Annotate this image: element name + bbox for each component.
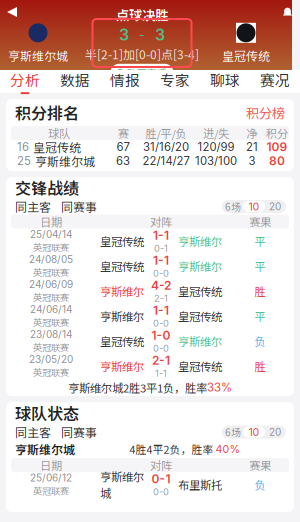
button[interactable]: 赛况	[250, 70, 300, 93]
staticText: 半[2-1]加[0-0]点[3-4]	[85, 45, 199, 63]
button[interactable]: 通知	[275, 0, 300, 25]
button[interactable]: 积分榜	[246, 103, 285, 122]
staticText: 3	[119, 25, 129, 44]
button[interactable]: 同赛事	[51, 423, 97, 441]
staticText: 交锋战绩	[15, 176, 79, 199]
staticText: 亨斯维尔	[100, 358, 144, 374]
staticText: 赛果	[249, 213, 271, 230]
staticText: 22/14/27	[142, 154, 189, 168]
staticText: 进/失	[203, 125, 229, 141]
staticText: 0-1	[154, 243, 168, 254]
button[interactable]: 数据	[50, 70, 100, 93]
staticText: 亨斯维尔	[178, 233, 222, 249]
staticText: 亨斯维尔城	[8, 47, 68, 64]
staticText: 31/16/20	[143, 140, 189, 154]
staticText: 4-2	[151, 278, 171, 293]
button[interactable]: 25/04/14	[11, 228, 289, 253]
staticText: 10	[248, 425, 259, 438]
button[interactable]: 聊球	[200, 70, 250, 93]
staticText: 点球决胜	[116, 5, 168, 24]
staticText: 24/06/14	[30, 303, 72, 315]
staticText: 日期	[40, 457, 62, 473]
staticText: 赛果	[249, 457, 271, 473]
staticText: 1-0	[151, 328, 170, 343]
staticText: 0-0	[153, 268, 169, 279]
staticText: 33%	[207, 381, 232, 394]
staticText: 平	[254, 258, 265, 274]
staticText: 21	[246, 140, 258, 154]
staticText: 同赛事	[61, 198, 97, 215]
staticText: 同主客	[15, 423, 51, 441]
staticText: 皇冠传统	[100, 233, 144, 249]
button[interactable]: 专家	[150, 70, 200, 93]
staticText: 6场	[225, 199, 241, 214]
button[interactable]: 返回	[0, 0, 25, 25]
staticText: 2-1	[154, 293, 168, 304]
staticText: 亨斯维尔	[178, 333, 222, 349]
staticText: 情报	[110, 69, 140, 90]
staticText: 赛况	[260, 69, 290, 90]
staticText: 球队状态	[15, 401, 79, 425]
button[interactable]: 分析	[0, 70, 50, 93]
staticText: 对阵	[150, 457, 172, 473]
staticText: 专家	[160, 69, 190, 90]
staticText: 积分榜	[246, 103, 285, 122]
staticText: 数据	[60, 69, 90, 90]
staticText: 皇冠传统	[178, 283, 222, 299]
staticText: 1-1	[153, 253, 169, 268]
staticText: 0-0	[153, 318, 169, 329]
staticText: 负	[254, 476, 265, 493]
button[interactable]: 情报	[100, 70, 150, 93]
staticText: 亨斯维尔城	[15, 440, 75, 458]
staticText: 1-1	[153, 303, 169, 318]
staticText: 动画直播	[126, 65, 166, 80]
staticText: 1-1	[153, 228, 169, 243]
staticText: 24/06/09	[29, 278, 73, 290]
staticText: 亨斯维尔	[100, 283, 144, 299]
button[interactable]: 同主客	[15, 198, 51, 215]
button[interactable]: 25/06/12	[11, 472, 289, 497]
staticText: 平	[254, 308, 265, 324]
staticText: 20	[269, 426, 281, 438]
staticText: 16	[17, 140, 29, 154]
staticText: 亨斯维尔	[178, 258, 222, 274]
staticText: 63	[116, 154, 130, 168]
staticText: 英冠联赛	[33, 315, 69, 329]
staticText: 积分排名	[15, 101, 79, 124]
button[interactable]: 24/06/09	[11, 278, 289, 303]
staticText: 1-1	[155, 368, 167, 379]
staticText: 积分	[266, 125, 288, 141]
staticText: 英冠联赛	[33, 365, 69, 379]
staticText: 40%	[215, 442, 239, 455]
staticText: 皇冠传统	[100, 258, 144, 274]
staticText: 英冠联赛	[33, 484, 69, 497]
staticText: 对阵	[150, 213, 172, 230]
button[interactable]: 24/08/05	[11, 253, 289, 278]
staticText: 负	[254, 333, 265, 349]
button[interactable]: 24/06/14	[11, 303, 289, 328]
staticText: 赛	[117, 125, 128, 141]
staticText: 2-1	[152, 353, 170, 368]
staticText: 分析	[10, 69, 40, 90]
staticText: 3	[248, 154, 255, 168]
staticText: 25/06/12	[30, 472, 72, 484]
button[interactable]: 23/08/14	[11, 328, 289, 353]
staticText: 80	[269, 154, 285, 168]
staticText: 胜	[254, 283, 265, 299]
staticText: 皇冠传统	[222, 47, 270, 64]
staticText: 平	[254, 233, 265, 249]
staticText: 3	[155, 25, 165, 44]
staticText: 23/05/20	[29, 353, 73, 365]
staticText: 皇冠传统	[178, 308, 222, 324]
staticText: 23/08/14	[30, 328, 72, 340]
staticText: -	[139, 27, 145, 42]
staticText: 6场	[225, 425, 241, 439]
button[interactable]: 23/05/20	[11, 353, 289, 378]
staticText: 英冠联赛	[33, 265, 69, 279]
button[interactable]: 同赛事	[51, 198, 97, 215]
staticText: 4胜4平2负，胜率	[129, 441, 215, 457]
staticText: 聊球	[210, 69, 240, 90]
button[interactable]: 同主客	[15, 423, 51, 441]
staticText: 亨斯维尔城	[35, 152, 95, 170]
staticText: 24/08/05	[29, 253, 73, 265]
